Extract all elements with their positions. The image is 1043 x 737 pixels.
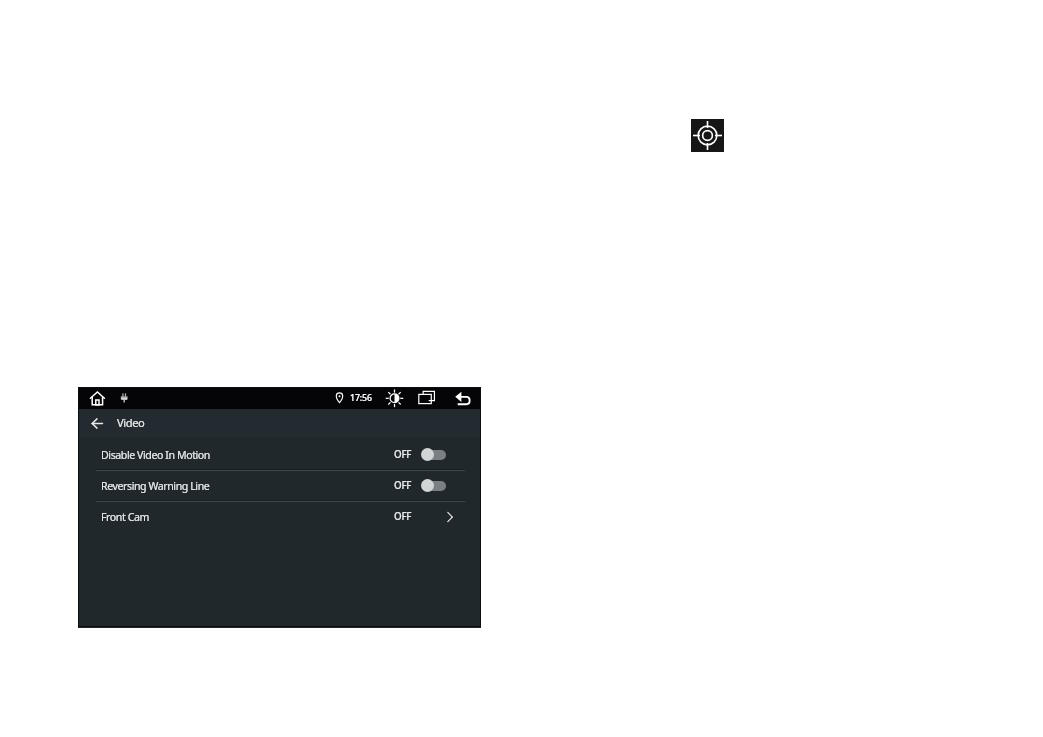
staticText: Front Cam: [101, 510, 149, 524]
button[interactable]: Back: [78, 409, 116, 437]
button[interactable]: Front Cam: [78, 504, 481, 529]
staticText: OFF: [394, 510, 412, 523]
staticText: OFF: [394, 479, 412, 492]
staticText: Video: [117, 415, 145, 430]
staticText: Disable Video In Motion: [101, 448, 210, 462]
staticText: OFF: [394, 448, 412, 461]
staticText: 17:56: [350, 392, 372, 404]
button[interactable]: Disable Video In Motion: [78, 442, 481, 467]
button[interactable]: My location: [691, 119, 724, 152]
button[interactable]: Reversing Warning Line: [78, 473, 481, 498]
staticText: Reversing Warning Line: [101, 479, 210, 493]
